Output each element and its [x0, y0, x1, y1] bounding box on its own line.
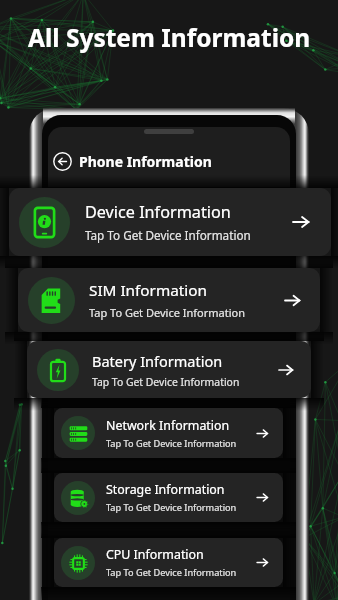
button[interactable]: Network Information: [54, 408, 283, 458]
staticText: Tap To Get Device Information: [89, 305, 245, 320]
staticText: All System Information: [28, 21, 311, 54]
staticText: Device Information: [85, 201, 231, 223]
staticText: Network Information: [106, 417, 230, 434]
button[interactable]: CPU Information: [54, 538, 283, 587]
button[interactable]: Device Information: [9, 188, 331, 256]
staticText: Tap To Get Device Information: [106, 566, 237, 579]
staticText: CPU Information: [106, 546, 204, 563]
button[interactable]: Back: [50, 149, 74, 173]
button[interactable]: Batery Information: [27, 341, 311, 398]
staticText: Tap To Get Device Information: [92, 375, 240, 389]
button[interactable]: Storage Information: [54, 473, 283, 522]
staticText: SIM Information: [89, 280, 207, 301]
staticText: Tap To Get Device Information: [85, 227, 251, 243]
staticText: Batery Information: [92, 351, 223, 371]
button[interactable]: SIM Information: [18, 268, 320, 332]
staticText: Storage Information: [106, 481, 225, 498]
staticText: Tap To Get Device Information: [106, 501, 237, 514]
staticText: Tap To Get Device Information: [106, 437, 237, 450]
staticText: Phone Information: [79, 152, 212, 171]
